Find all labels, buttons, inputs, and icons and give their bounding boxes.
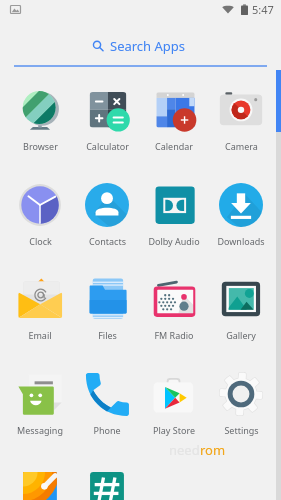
staticText: Files [98,329,117,341]
button[interactable]: Camera [207,72,274,166]
button[interactable]: Themes [6,451,73,500]
staticText: Downloads [217,235,265,247]
staticText: Dolby Audio [148,235,200,247]
staticText: Calculator [86,140,129,152]
staticText: Email [28,329,52,341]
button[interactable]: Messaging [6,356,73,450]
staticText: 5:47 [252,2,274,17]
staticText: rom [200,441,226,459]
staticText: Contacts [89,235,126,247]
button[interactable]: Play Store [140,356,207,450]
button[interactable]: Search Apps [86,34,192,58]
staticText: Search Apps [110,37,186,55]
button[interactable]: Notes [73,451,140,500]
staticText: Browser [23,140,58,152]
button[interactable]: Calendar [140,72,207,166]
other: Screenshot [10,4,21,15]
button[interactable]: Calculator [73,72,140,166]
button[interactable]: Contacts [73,167,140,261]
staticText: Camera [225,140,258,152]
staticText: Messaging [17,424,63,436]
staticText: Gallery [226,329,256,341]
staticText: Calendar [155,140,193,152]
staticText: FM Radio [154,329,194,341]
button[interactable]: Settings [207,356,274,450]
button[interactable]: FM Radio [140,261,207,355]
button[interactable]: Gallery [207,261,274,355]
button[interactable]: Dolby Audio [140,167,207,261]
button[interactable]: Phone [73,356,140,450]
staticText: Settings [224,424,259,436]
staticText: Play Store [153,424,195,436]
button[interactable]: Downloads [207,167,274,261]
button[interactable]: Clock [6,167,73,261]
button[interactable]: Email [6,261,73,355]
staticText: Clock [29,235,52,247]
staticText: need [169,441,200,459]
button[interactable]: Browser [6,72,73,166]
button[interactable]: Files [73,261,140,355]
staticText: Phone [93,424,121,436]
